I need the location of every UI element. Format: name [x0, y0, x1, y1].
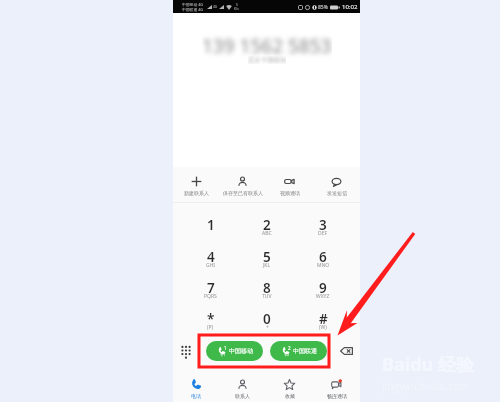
- staticText: 联系人: [235, 393, 250, 399]
- staticText: 中国移动: [229, 347, 253, 355]
- staticText: 中国联通 4G: [182, 7, 204, 12]
- button[interactable]: 1: [206, 341, 263, 361]
- staticText: PQRS: [204, 293, 217, 300]
- button[interactable]: 4: [182, 246, 239, 277]
- button[interactable]: 电话: [173, 367, 219, 402]
- staticText: +: [266, 324, 269, 331]
- button[interactable]: 联系人: [219, 367, 266, 402]
- staticText: 10:02: [342, 3, 358, 11]
- staticText: GHI: [206, 262, 216, 269]
- button[interactable]: 5: [239, 246, 295, 277]
- staticText: MNO: [317, 262, 330, 269]
- button[interactable]: 新建联系人: [173, 167, 219, 203]
- staticText: 4G: [213, 5, 218, 9]
- staticText: 5: [236, 3, 238, 7]
- staticText: 电话: [191, 393, 201, 399]
- button[interactable]: 3: [295, 214, 351, 246]
- staticText: 视频通话: [280, 190, 300, 196]
- staticText: K/s: [234, 7, 239, 11]
- staticText: Baidu 经验: [382, 352, 474, 377]
- staticText: WXYZ: [316, 293, 330, 300]
- staticText: 3: [319, 216, 327, 234]
- staticText: 139 1562 5853: [202, 33, 332, 59]
- button[interactable]: 1: [182, 214, 239, 246]
- staticText: (W): [319, 324, 327, 331]
- staticText: DEF: [318, 230, 328, 237]
- staticText: ABC: [262, 230, 272, 237]
- button[interactable]: 7: [182, 277, 239, 308]
- staticText: *: [207, 310, 215, 328]
- staticText: 新建联系人: [184, 190, 209, 196]
- staticText: 保存至已有联系人: [223, 190, 263, 196]
- button[interactable]: 6: [295, 246, 351, 277]
- staticText: 北京 中国移动: [248, 56, 286, 64]
- staticText: 9: [319, 279, 327, 297]
- staticText: 发送短信: [327, 190, 347, 196]
- button[interactable]: 9: [295, 277, 351, 308]
- button[interactable]: 0: [239, 308, 295, 339]
- button[interactable]: #: [295, 308, 351, 339]
- staticText: 中国移动 4G: [182, 2, 204, 7]
- staticText: 卡1: [220, 353, 226, 357]
- staticText: 2: [263, 216, 271, 234]
- staticText: 0: [263, 310, 271, 328]
- staticText: 收藏: [285, 393, 295, 399]
- button[interactable]: 收藏: [266, 367, 313, 402]
- staticText: JKL: [263, 262, 271, 269]
- staticText: 1: [207, 216, 215, 234]
- button[interactable]: *: [182, 308, 239, 339]
- button[interactable]: 发送短信: [313, 167, 360, 203]
- button[interactable]: Delete: [335, 334, 357, 367]
- staticText: 8: [263, 279, 271, 297]
- staticText: 中国联通: [293, 347, 317, 355]
- staticText: 2: [288, 345, 291, 351]
- staticText: 85%: [318, 4, 328, 11]
- button[interactable]: 畅连通话: [313, 367, 360, 402]
- button[interactable]: 视频通话: [266, 167, 313, 203]
- staticText: 1: [224, 345, 227, 351]
- staticText: 5: [263, 248, 271, 266]
- staticText: 4: [207, 248, 215, 266]
- button[interactable]: 8: [239, 277, 295, 308]
- button[interactable]: Dialpad: [178, 334, 194, 367]
- button[interactable]: 2: [239, 214, 295, 246]
- staticText: TUV: [262, 293, 272, 300]
- staticText: 7: [207, 279, 215, 297]
- staticText: 6: [319, 248, 327, 266]
- staticText: 卡2: [284, 353, 290, 357]
- staticText: (P): [207, 324, 214, 331]
- staticText: #: [319, 310, 328, 328]
- button[interactable]: 2: [270, 341, 327, 361]
- button[interactable]: 保存至已有联系人: [219, 167, 266, 203]
- staticText: 畅连通话: [327, 393, 347, 399]
